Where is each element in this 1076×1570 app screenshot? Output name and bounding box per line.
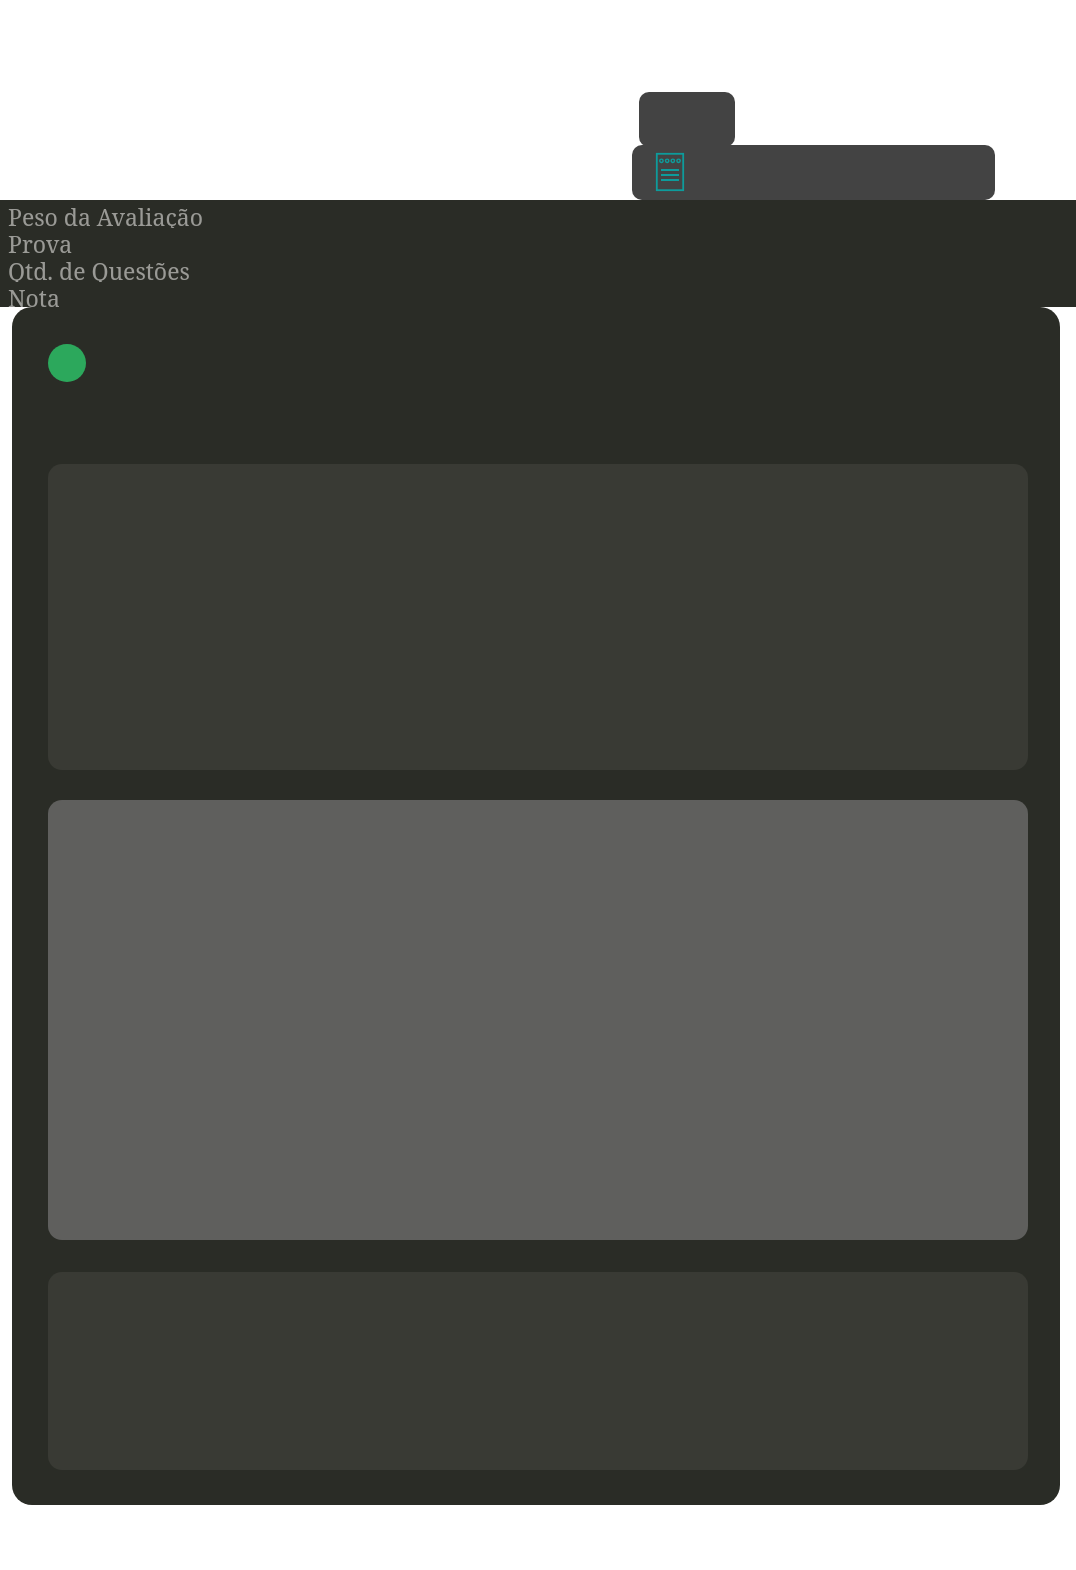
button[interactable]: Notes [632, 145, 995, 200]
button[interactable] [12, 307, 1060, 1505]
button[interactable]: Overflow menu [639, 92, 735, 147]
staticText: Prova [8, 228, 73, 255]
staticText: Qtd. de Questões [8, 255, 190, 282]
staticText: Peso da Avaliação [8, 201, 203, 228]
staticText: Nota [8, 282, 60, 308]
button[interactable]: Notes [655, 152, 685, 192]
